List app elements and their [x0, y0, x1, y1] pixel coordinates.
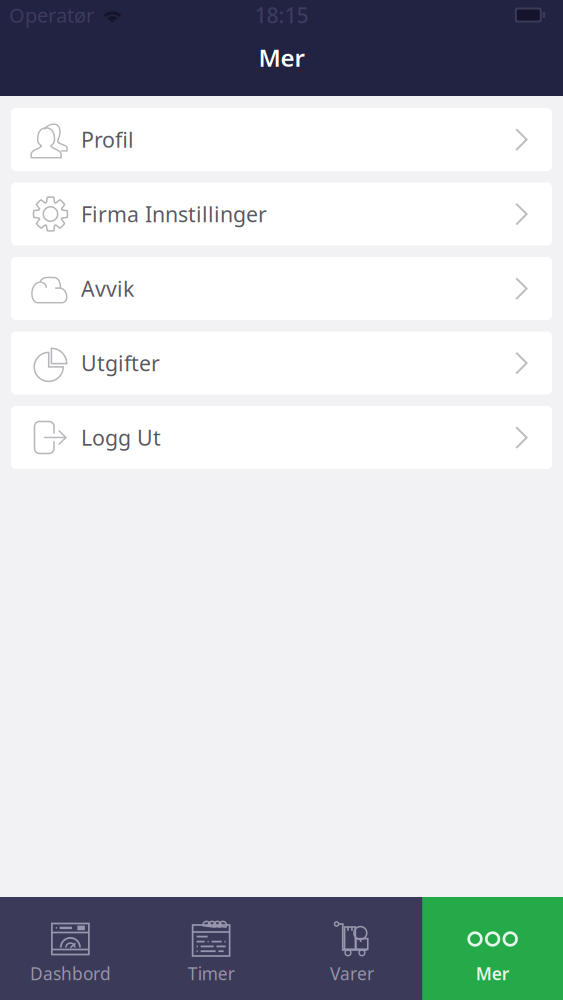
- staticText: 18:15: [254, 1, 308, 29]
- staticText: Profil: [81, 125, 134, 154]
- staticText: Dashbord: [30, 962, 111, 985]
- button[interactable]: Dashbord: [0, 897, 141, 1000]
- button[interactable]: Logg Ut: [11, 406, 552, 469]
- staticText: Mer: [258, 42, 304, 73]
- staticText: Varer: [330, 962, 374, 985]
- staticText: Mer: [476, 962, 510, 985]
- staticText: Avvik: [81, 274, 134, 303]
- staticText: Operatør: [9, 2, 94, 28]
- button[interactable]: Avvik: [11, 257, 552, 320]
- button[interactable]: Varer: [281, 897, 422, 1000]
- staticText: Logg Ut: [81, 423, 161, 452]
- button[interactable]: Utgifter: [11, 331, 552, 394]
- staticText: Firma Innstillinger: [81, 200, 267, 228]
- staticText: Utgifter: [81, 349, 160, 377]
- button[interactable]: Mer: [422, 897, 563, 1000]
- staticText: Timer: [188, 962, 235, 985]
- button[interactable]: Profil: [11, 108, 552, 171]
- button[interactable]: Timer: [141, 897, 282, 1000]
- button[interactable]: Firma Innstillinger: [11, 182, 552, 245]
